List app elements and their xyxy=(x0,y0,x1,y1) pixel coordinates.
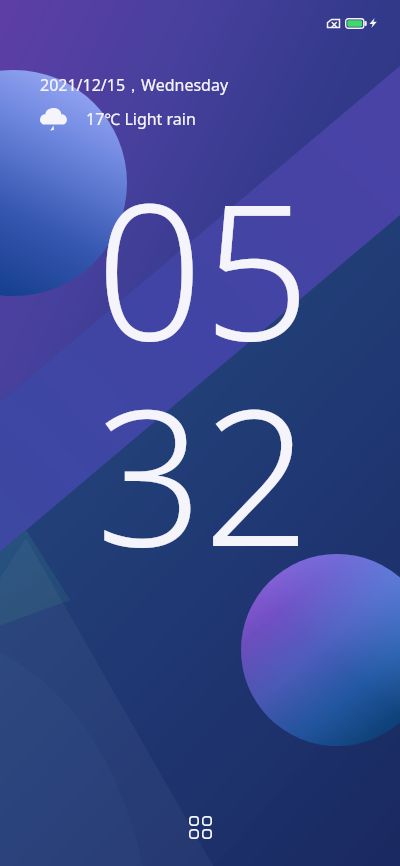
staticText: 17℃ Light rain xyxy=(86,108,196,130)
button[interactable]: Open app shortcuts xyxy=(176,803,224,851)
staticText: 2021/12/15，Wednesday xyxy=(40,74,229,96)
staticText: 05 xyxy=(3,139,400,395)
staticText: 32 xyxy=(3,345,400,601)
